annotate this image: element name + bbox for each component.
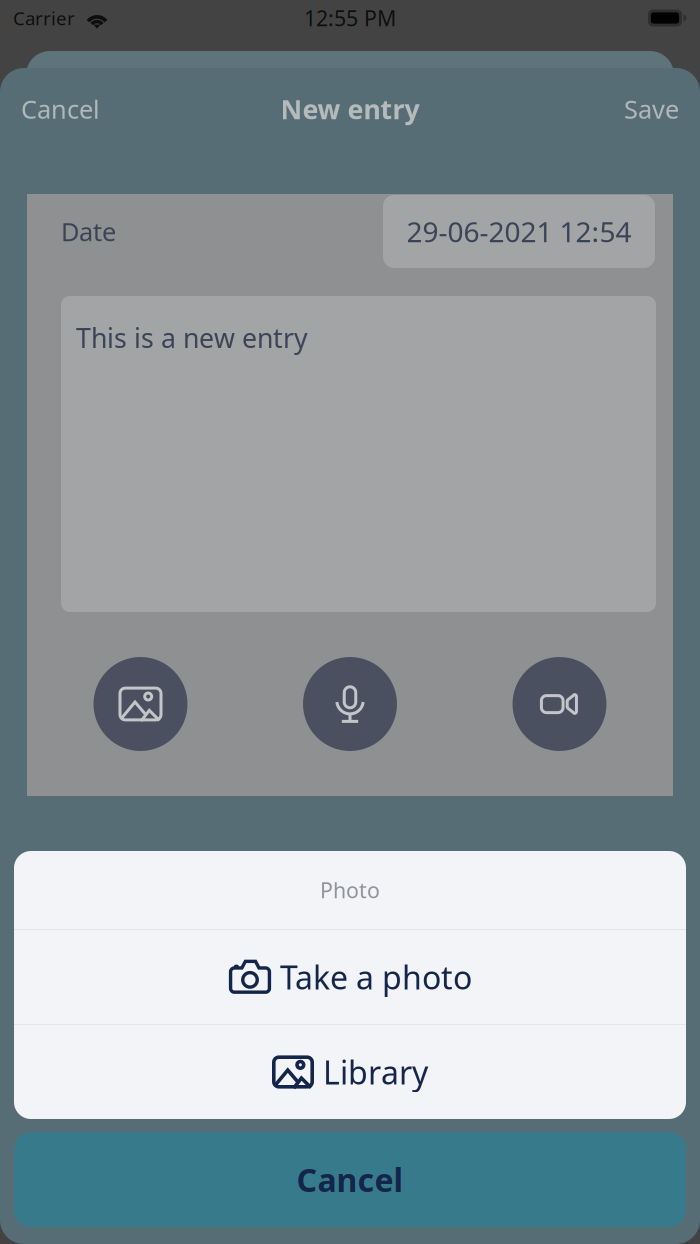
staticText: Cancel xyxy=(296,1158,403,1201)
staticText: Carrier xyxy=(13,6,75,30)
button[interactable]: Take a photo xyxy=(14,930,686,1024)
button[interactable]: Save xyxy=(603,76,700,142)
button[interactable]: Record audio xyxy=(303,657,397,751)
staticText: Photo xyxy=(320,876,380,904)
staticText: Date xyxy=(61,215,116,248)
staticText: New entry xyxy=(280,91,419,127)
button[interactable]: Cancel xyxy=(0,76,121,142)
staticText: Take a photo xyxy=(280,956,472,998)
staticText: This is a new entry xyxy=(76,320,308,355)
button[interactable]: Library xyxy=(14,1025,686,1119)
button[interactable]: Record video xyxy=(512,657,606,751)
staticText: Save xyxy=(624,92,679,126)
staticText: 29-06-2021 12:54 xyxy=(406,213,631,250)
staticText: Library xyxy=(323,1051,428,1093)
staticText: 12:55 PM xyxy=(304,4,396,32)
button[interactable]: Add photo xyxy=(93,657,187,751)
button[interactable]: Cancel xyxy=(14,1132,686,1227)
button[interactable]: 29-06-2021 12:54 xyxy=(383,195,655,268)
staticText: Cancel xyxy=(21,92,100,126)
